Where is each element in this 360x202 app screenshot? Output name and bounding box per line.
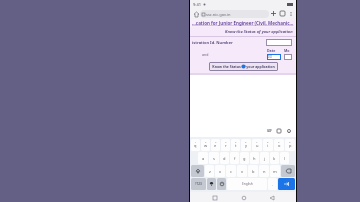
- staticText: x: [219, 169, 222, 174]
- staticText: 4: [225, 140, 227, 143]
- button[interactable]: c: [226, 165, 236, 177]
- staticText: 6: [245, 140, 247, 143]
- staticText: 2: [205, 140, 207, 143]
- staticText: GIF: [267, 129, 272, 133]
- staticText: y: [245, 143, 248, 148]
- staticText: Know the Status of your application: [225, 29, 293, 34]
- button[interactable]: English: [227, 178, 267, 190]
- button[interactable]: Registration Id field: [266, 39, 292, 46]
- staticText: ?123: [195, 182, 202, 186]
- button[interactable]: New tab: [269, 9, 278, 18]
- button[interactable]: Emoji: [217, 178, 226, 190]
- staticText: 9:41: [193, 2, 201, 7]
- button[interactable]: 5: [231, 139, 240, 151]
- staticText: and: [202, 52, 209, 57]
- staticText: i: [267, 143, 269, 148]
- staticText: h: [253, 156, 256, 161]
- staticText: s: [213, 156, 215, 161]
- button[interactable]: Back: [267, 193, 276, 202]
- staticText: 8: [267, 140, 269, 143]
- button[interactable]: j: [260, 152, 269, 164]
- button[interactable]: Backspace: [281, 165, 295, 177]
- staticText: c: [230, 169, 232, 174]
- button[interactable]: m: [270, 165, 280, 177]
- button[interactable]: l: [280, 152, 289, 164]
- button[interactable]: Voice input: [207, 178, 216, 190]
- button[interactable]: n: [259, 165, 269, 177]
- button[interactable]: GIF: [265, 127, 273, 135]
- button[interactable]: Know the Status of your application: [209, 62, 278, 71]
- button[interactable]: Home: [239, 193, 248, 202]
- staticText: u: [256, 143, 259, 148]
- button[interactable]: Shift: [191, 165, 204, 177]
- button[interactable]: Clipboard: [275, 127, 283, 135]
- staticText: 0: [289, 140, 291, 143]
- button[interactable]: Month field: [284, 54, 292, 60]
- staticText: l: [284, 156, 286, 161]
- staticText: a: [202, 156, 205, 161]
- staticText: 7: [256, 140, 258, 143]
- staticText: ssc.nic.gov.in: [206, 12, 231, 17]
- button[interactable]: v: [237, 165, 247, 177]
- button[interactable]: Date field: [267, 54, 281, 60]
- button[interactable]: 9: [274, 139, 284, 151]
- staticText: Mo: [284, 48, 290, 53]
- button[interactable]: g: [240, 152, 249, 164]
- button[interactable]: 4: [221, 139, 230, 151]
- staticText: o: [278, 143, 281, 148]
- button[interactable]: b: [248, 165, 258, 177]
- staticText: 9: [278, 140, 280, 143]
- button[interactable]: x: [215, 165, 225, 177]
- staticText: istration Id. Number: [192, 40, 233, 45]
- staticText: t: [235, 143, 237, 148]
- staticText: v: [241, 169, 244, 174]
- staticText: d: [223, 156, 226, 161]
- staticText: 1: [195, 140, 197, 143]
- staticText: .: [272, 182, 274, 187]
- staticText: k: [273, 156, 276, 161]
- button[interactable]: Home: [192, 10, 200, 18]
- button[interactable]: f: [230, 152, 239, 164]
- button[interactable]: 3: [211, 139, 220, 151]
- staticText: Date: [267, 48, 276, 53]
- staticText: f: [234, 156, 236, 161]
- button[interactable]: 1: [191, 139, 200, 151]
- button[interactable]: k: [270, 152, 279, 164]
- button[interactable]: 2: [201, 139, 210, 151]
- button[interactable]: 8: [263, 139, 273, 151]
- staticText: p: [289, 143, 292, 148]
- button[interactable]: a: [198, 152, 208, 164]
- staticText: z: [209, 169, 211, 174]
- staticText: g: [243, 156, 246, 161]
- button[interactable]: More options: [287, 10, 294, 17]
- button[interactable]: Tabs: [278, 9, 287, 18]
- staticText: 5: [235, 140, 237, 143]
- button[interactable]: Symbols: [191, 178, 206, 190]
- staticText: e: [214, 143, 217, 148]
- staticText: DD: [267, 55, 273, 59]
- staticText: English: [242, 182, 253, 186]
- button[interactable]: d: [220, 152, 229, 164]
- button[interactable]: 7: [252, 139, 262, 151]
- button[interactable]: z: [205, 165, 214, 177]
- staticText: j: [264, 156, 266, 161]
- staticText: Know the Status of your application: [212, 64, 275, 69]
- button[interactable]: s: [209, 152, 219, 164]
- button[interactable]: Next field: [278, 178, 295, 190]
- button[interactable]: 0: [285, 139, 295, 151]
- staticText: w: [204, 143, 208, 148]
- staticText: 3: [215, 140, 217, 143]
- button[interactable]: h: [250, 152, 259, 164]
- staticText: n: [263, 169, 266, 174]
- staticText: r: [225, 143, 227, 148]
- button[interactable]: Settings: [285, 127, 293, 135]
- staticText: m: [273, 169, 277, 174]
- staticText: q: [194, 143, 197, 148]
- button[interactable]: 6: [241, 139, 251, 151]
- staticText: b: [252, 169, 255, 174]
- button[interactable]: Recent apps: [210, 193, 219, 202]
- staticText: …cation for Junior Engineer (Civil, Mech…: [192, 20, 294, 26]
- button[interactable]: ssc.nic.gov.in: [200, 10, 269, 18]
